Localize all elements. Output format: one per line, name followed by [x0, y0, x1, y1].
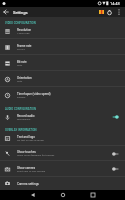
button[interactable]: More options	[112, 7, 125, 17]
staticText: Disable	[17, 96, 26, 99]
button[interactable]: Recent apps	[88, 190, 98, 200]
button[interactable]: Resolution	[0, 23, 125, 39]
staticText: No text or logo is shown	[17, 139, 44, 142]
staticText: 1920x1080	[17, 32, 30, 35]
button[interactable]: Orientation	[0, 71, 125, 87]
button[interactable]: Show touches	[0, 146, 125, 161]
staticText: Record audio	[17, 114, 35, 118]
button[interactable]: Navigate up	[0, 7, 12, 17]
staticText: Show visual feedback for touches	[17, 154, 55, 157]
button[interactable]: Home	[58, 190, 68, 200]
staticText: Orientation	[17, 76, 32, 80]
button[interactable]: Show camera	[0, 161, 125, 177]
button[interactable]: Upgrade to pro	[94, 7, 103, 17]
staticText: Show touches	[17, 150, 36, 154]
staticText: Show camera	[17, 166, 36, 170]
button[interactable]: Text and logo	[0, 130, 125, 146]
staticText: Text and logo	[17, 135, 36, 139]
staticText: Auto	[17, 80, 23, 83]
staticText: 30 FPS	[17, 48, 25, 51]
staticText: Microphone	[17, 118, 31, 121]
staticText: 14:48	[110, 1, 120, 6]
button[interactable]: Bit rate	[0, 55, 125, 71]
button[interactable]: Back	[28, 190, 38, 200]
staticText: Bit rate	[17, 60, 27, 64]
staticText: VIDEO CONFIGURATION	[5, 21, 125, 24]
staticText: Camera settings	[17, 182, 39, 186]
staticText: Auto	[17, 64, 23, 67]
staticText: AUDIO CONFIGURATION	[5, 107, 125, 110]
staticText: OVERLAY INFORMATION	[5, 128, 125, 131]
staticText: Front cam or rear camera	[17, 170, 46, 173]
staticText: Frame rate	[17, 44, 32, 48]
staticText: Resolution	[17, 28, 32, 32]
staticText: Time-lapse (video speed)	[17, 92, 51, 96]
staticText: Settings	[13, 10, 28, 15]
button[interactable]: Camera settings	[0, 177, 125, 190]
button[interactable]: Timer	[103, 7, 112, 17]
button[interactable]: Time-lapse (video speed)	[0, 87, 125, 103]
button[interactable]: Record audio	[0, 109, 125, 125]
button[interactable]: Frame rate	[0, 39, 125, 55]
